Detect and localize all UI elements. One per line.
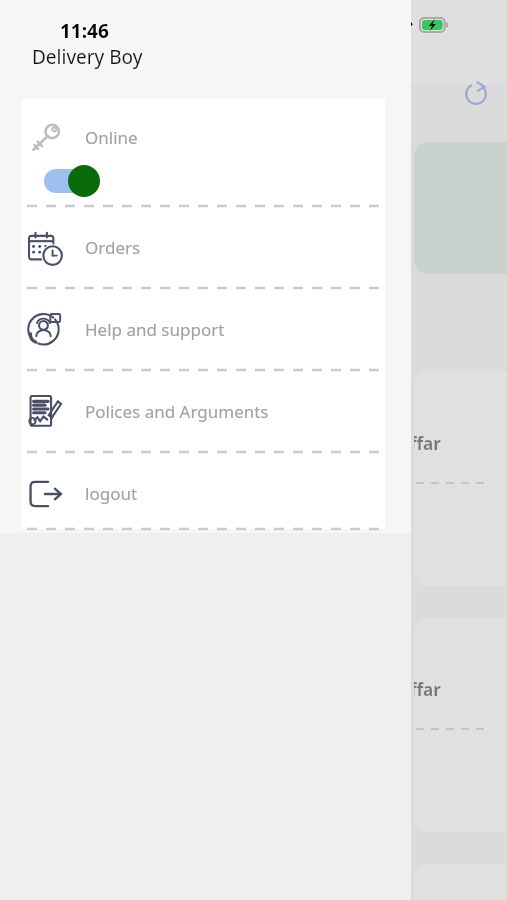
staticText: ffar — [414, 432, 441, 455]
button[interactable]: Refresh — [458, 76, 494, 112]
button[interactable]: Help and support — [22, 289, 385, 369]
staticText: Online — [85, 126, 138, 149]
staticText: Help and support — [85, 318, 225, 341]
button[interactable]: Online toggle — [44, 165, 102, 197]
button[interactable]: Online — [22, 99, 385, 205]
staticText: ffar — [414, 678, 441, 701]
button[interactable]: Polices and Arguments — [22, 371, 385, 451]
staticText: Polices and Arguments — [85, 400, 269, 423]
staticText: 11:46 — [60, 18, 109, 44]
staticText: Orders — [85, 236, 141, 259]
button[interactable]: Orders — [22, 207, 385, 287]
staticText: Delivery Boy — [32, 44, 143, 70]
staticText: logout — [85, 482, 138, 505]
button[interactable]: logout — [22, 453, 385, 529]
